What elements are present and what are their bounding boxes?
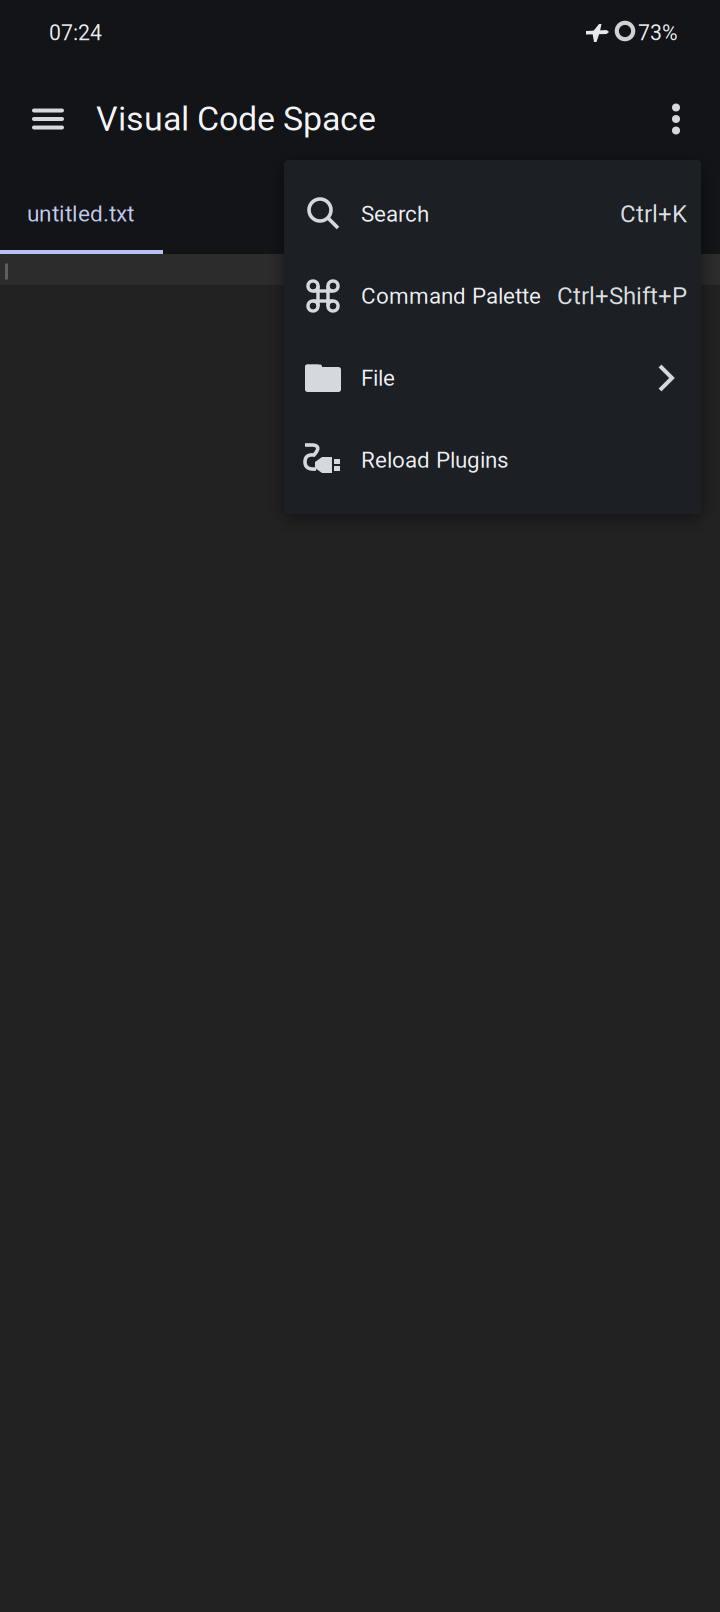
staticText: Search bbox=[361, 201, 429, 227]
button[interactable]: Menu bbox=[0, 72, 96, 166]
staticText: Visual Code Space bbox=[96, 99, 376, 139]
button[interactable]: Search bbox=[284, 173, 701, 255]
staticText: 07:24 bbox=[49, 20, 102, 45]
staticText: Reload Plugins bbox=[361, 447, 509, 473]
button[interactable]: File bbox=[284, 337, 701, 419]
staticText: Ctrl+K bbox=[620, 200, 687, 228]
button[interactable]: untitled.txt bbox=[0, 160, 163, 254]
staticText: File bbox=[361, 365, 395, 391]
staticText: Ctrl+Shift+P bbox=[557, 282, 687, 310]
staticText: Command Palette bbox=[361, 283, 541, 309]
button[interactable]: More options bbox=[632, 72, 720, 166]
button[interactable]: Command Palette bbox=[284, 255, 701, 337]
staticText: untitled.txt bbox=[27, 200, 134, 227]
button[interactable]: Reload Plugins bbox=[284, 419, 701, 501]
staticText: 73% bbox=[638, 20, 678, 45]
